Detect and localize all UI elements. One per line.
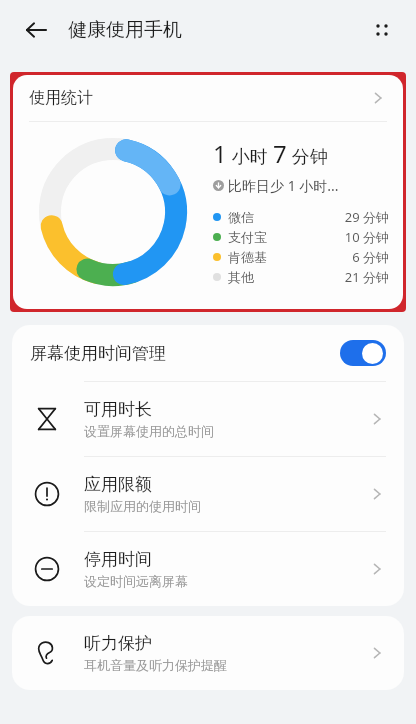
button[interactable]: 屏幕使用时间管理 (12, 325, 404, 381)
staticText: 6 分钟 (352, 248, 389, 266)
staticText: 限制应用的使用时间 (84, 498, 201, 514)
staticText: 其他 (228, 269, 254, 285)
staticText: 小时 (227, 144, 273, 169)
staticText: 10 分钟 (344, 228, 389, 246)
staticText: 可用时长 (84, 399, 152, 420)
staticText: 支付宝 (228, 229, 267, 245)
staticText: 分钟 (287, 144, 328, 169)
staticText: 21 分钟 (344, 268, 389, 286)
staticText: 听力保护 (84, 633, 152, 654)
staticText: 微信 (228, 209, 254, 225)
button[interactable]: 听力保护 (12, 616, 404, 690)
staticText: 7 (273, 137, 287, 170)
button[interactable]: Screen time management toggle (340, 340, 386, 366)
staticText: 健康使用手机 (68, 18, 182, 42)
staticText: 屏幕使用时间管理 (30, 343, 166, 364)
button[interactable]: More options (360, 8, 404, 52)
staticText: 29 分钟 (344, 208, 389, 226)
button[interactable]: 可用时长 (12, 382, 404, 456)
button[interactable]: Back (14, 8, 58, 52)
staticText: 肯德基 (228, 249, 267, 265)
button[interactable]: 使用统计 (13, 75, 403, 121)
staticText: 1 (213, 137, 227, 170)
staticText: 耳机音量及听力保护提醒 (84, 657, 227, 673)
staticText: 停用时间 (84, 549, 152, 570)
staticText: 设定时间远离屏幕 (84, 573, 188, 589)
staticText: 设置屏幕使用的总时间 (84, 423, 214, 439)
button[interactable]: 应用限额 (12, 457, 404, 531)
staticText: 比昨日少 1 小时... (228, 176, 339, 195)
staticText: 应用限额 (84, 474, 152, 495)
button[interactable]: 停用时间 (12, 532, 404, 606)
staticText: 使用统计 (29, 88, 93, 108)
